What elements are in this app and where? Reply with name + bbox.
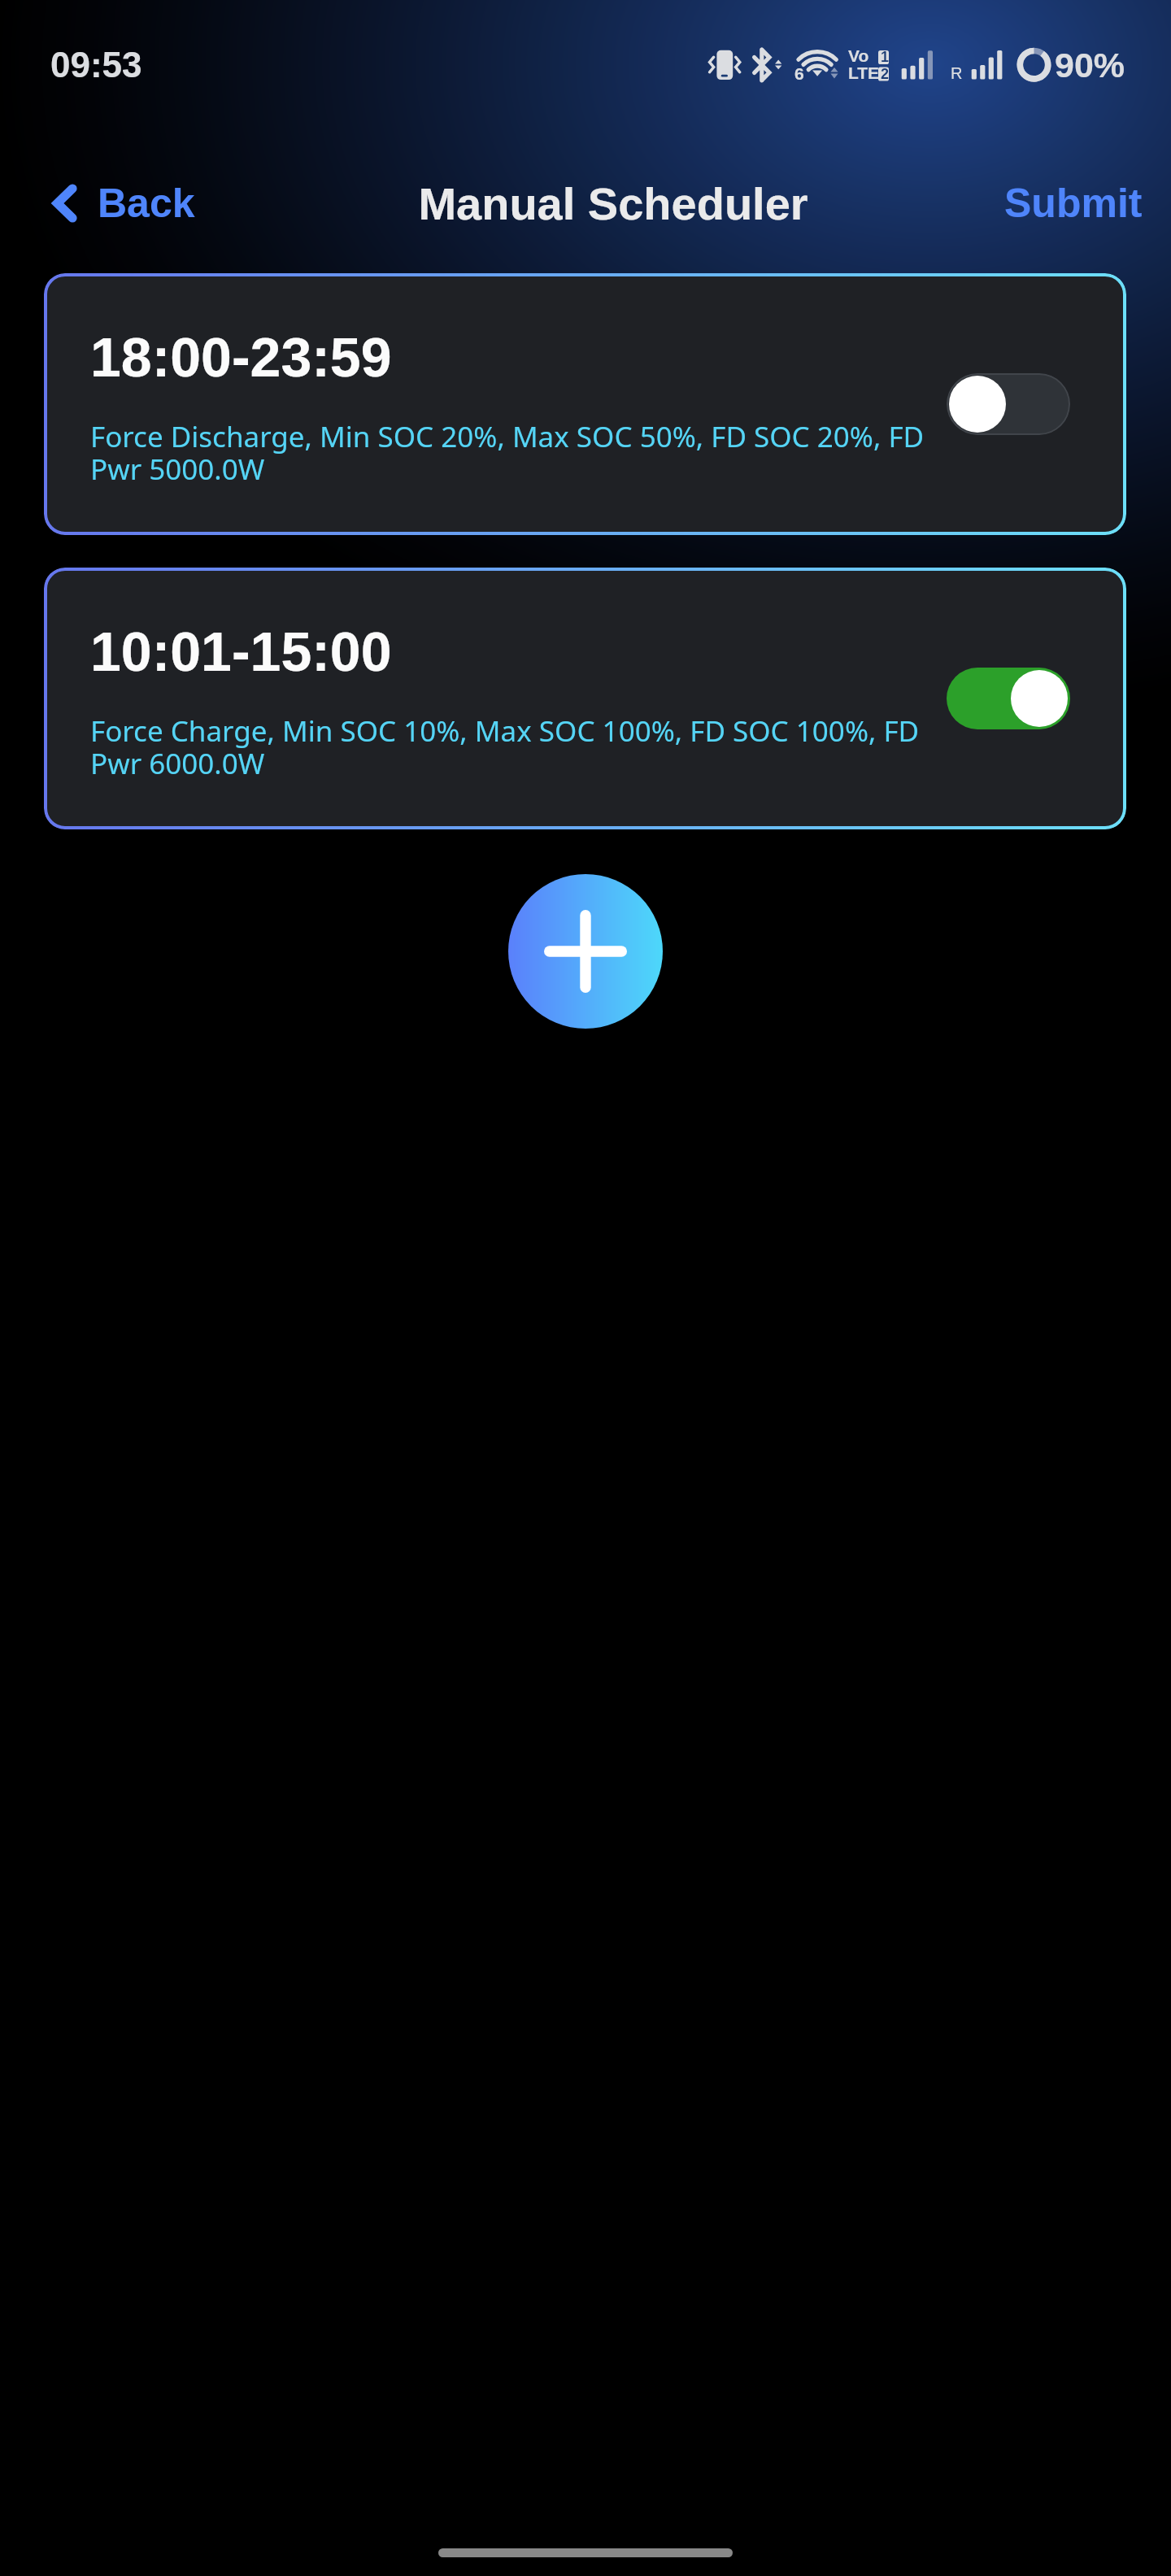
button[interactable]: Submit: [980, 164, 1171, 242]
staticText: Vo: [848, 46, 869, 65]
staticText: 6: [794, 64, 804, 83]
staticText: Back: [98, 181, 195, 226]
staticText: 10:01-15:00: [90, 620, 392, 682]
button[interactable]: Add schedule: [508, 874, 663, 1029]
button[interactable]: Back: [53, 181, 195, 226]
staticText: 09:53: [50, 45, 142, 85]
staticText: Manual Scheduler: [418, 178, 808, 229]
staticText: Submit: [1004, 181, 1143, 226]
staticText: Force Charge, Min SOC 10%, Max SOC 100%,…: [90, 711, 932, 783]
staticText: 1: [881, 49, 890, 65]
staticText: Force Discharge, Min SOC 20%, Max SOC 50…: [90, 417, 932, 489]
button[interactable]: Schedule disabled: [947, 373, 1070, 435]
button[interactable]: 18:00-23:59: [44, 273, 1126, 535]
staticText: R: [951, 64, 963, 82]
staticText: 18:00-23:59: [90, 326, 392, 388]
staticText: 90%: [1055, 46, 1125, 85]
button[interactable]: 10:01-15:00: [44, 568, 1126, 829]
staticText: LTE: [848, 63, 880, 82]
button[interactable]: Schedule enabled: [947, 668, 1070, 729]
staticText: 2: [881, 66, 890, 82]
